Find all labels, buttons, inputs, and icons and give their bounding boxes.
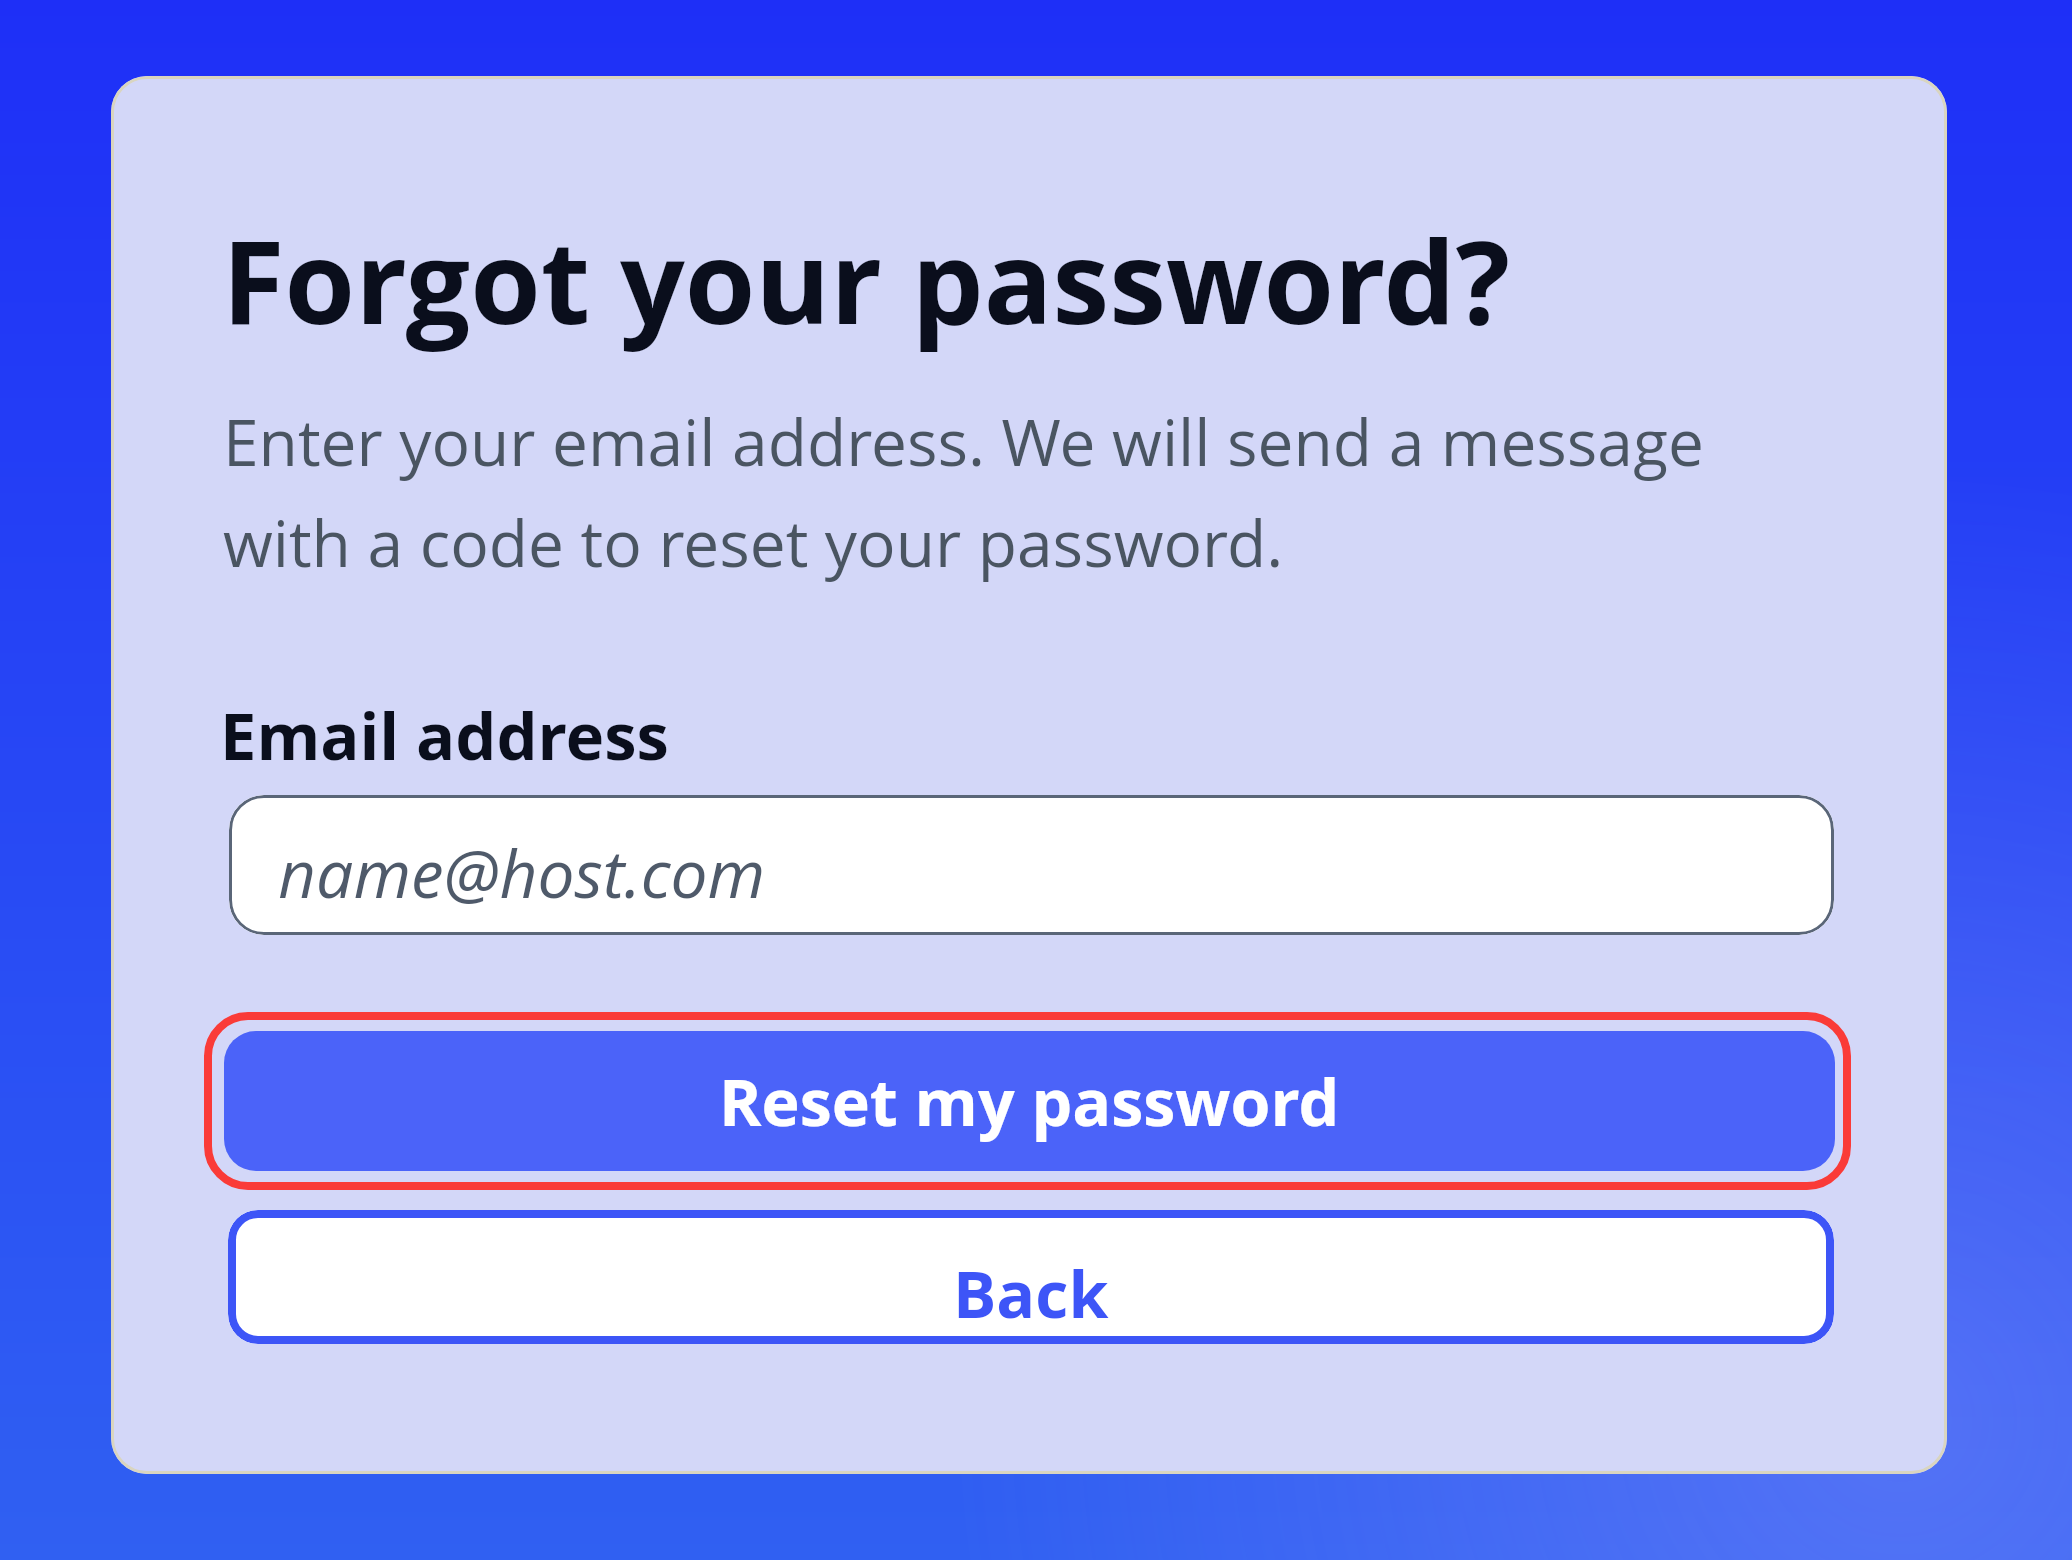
- staticText: Forgot your password?: [222, 202, 1511, 357]
- button[interactable]: Reset my password: [224, 1031, 1835, 1171]
- staticText: Enter your email address. We will send a…: [223, 398, 1704, 485]
- staticText: name@host.com: [278, 827, 766, 917]
- button[interactable]: name@host.com: [229, 795, 1834, 935]
- staticText: with a code to reset your password.: [223, 499, 1284, 586]
- staticText: Email address: [220, 691, 669, 780]
- staticText: Reset my password: [719, 1057, 1340, 1145]
- staticText: Back: [953, 1249, 1109, 1337]
- button[interactable]: Back: [228, 1210, 1834, 1344]
